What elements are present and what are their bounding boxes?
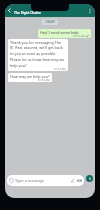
staticText: Hey! I need some help [40, 30, 79, 35]
staticText: The Right Choice [14, 10, 41, 14]
staticText: Type a message [15, 178, 45, 183]
staticText: 10:24 AM [38, 79, 50, 81]
button[interactable]: Type a message [7, 175, 84, 186]
button[interactable]: Camera [77, 178, 82, 183]
staticText: 10:24 AM [73, 35, 85, 37]
button[interactable]: Voice message [86, 175, 93, 182]
button[interactable]: Back [6, 7, 13, 14]
staticText: TODAY [45, 20, 55, 24]
staticText: How may we help you? [10, 74, 50, 79]
staticText: 10:24 AM [54, 68, 66, 70]
button[interactable]: Attach [70, 178, 75, 183]
staticText: Thank you for messaging The K!. Rest ass… [10, 40, 66, 68]
button[interactable]: More options [86, 7, 94, 15]
